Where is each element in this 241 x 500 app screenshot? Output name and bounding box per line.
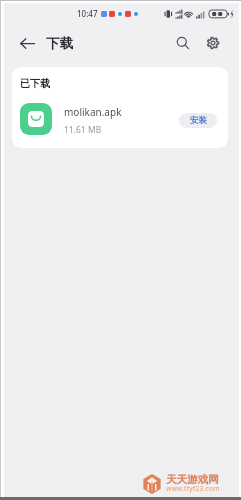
button[interactable]: Settings [198,28,228,58]
staticText: 下载 [46,35,73,52]
staticText: www.ttyf23.com [166,484,220,493]
button[interactable]: 安装 [179,113,217,128]
button[interactable]: molikan.apk [12,98,228,142]
staticText: molikan.apk [64,105,122,119]
staticText: 天天游戏网 [166,473,219,486]
staticText: 安装 [190,115,207,126]
staticText: 已下载 [20,77,50,90]
staticText: 10:47 [77,8,98,19]
staticText: 11.61 MB [64,124,102,136]
button[interactable]: Search [168,28,198,58]
button[interactable]: Back [12,28,42,58]
